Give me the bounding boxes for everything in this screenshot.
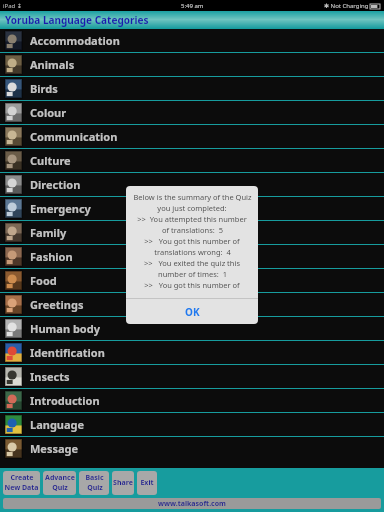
staticText: Accommodation	[30, 33, 120, 48]
staticText: Culture	[30, 153, 71, 168]
staticText: 5:49 am	[181, 2, 204, 10]
staticText: Birds	[30, 81, 58, 96]
button[interactable]: Accommodation	[0, 29, 384, 52]
staticText: Greetings	[30, 297, 84, 312]
staticText: Introduction	[30, 393, 100, 408]
button[interactable]: Colour	[0, 101, 384, 124]
staticText: Communication	[30, 129, 118, 144]
button[interactable]: Exit	[137, 471, 157, 495]
staticText: >> You attempted this number	[137, 214, 247, 224]
staticText: Animals	[30, 57, 75, 72]
button[interactable]: Culture	[0, 149, 384, 172]
staticText: translations wrong: 4	[154, 247, 231, 257]
staticText: >> You got this number of	[144, 280, 240, 290]
button[interactable]: Emergency	[0, 197, 384, 220]
staticText: iPad ↨	[3, 2, 22, 10]
staticText: Exit	[140, 478, 154, 488]
button[interactable]: Share	[112, 471, 134, 495]
staticText: Language	[30, 417, 85, 432]
button[interactable]: Direction	[0, 173, 384, 196]
button[interactable]: Animals	[0, 53, 384, 76]
staticText: number of times: 1	[158, 269, 227, 279]
button[interactable]: Fashion	[0, 245, 384, 268]
staticText: Food	[30, 273, 57, 288]
staticText: Share	[113, 478, 133, 488]
button[interactable]: Food	[0, 269, 384, 292]
staticText: of translations: 5	[162, 225, 223, 235]
button[interactable]: Communication	[0, 125, 384, 148]
button[interactable]: Advance	[43, 471, 76, 495]
staticText: you just completed:	[157, 203, 227, 213]
button[interactable]: Identification	[0, 341, 384, 364]
button[interactable]: www.talkasoft.com	[3, 498, 381, 509]
staticText: Insects	[30, 369, 70, 384]
staticText: ✱ Not Charging	[324, 2, 370, 10]
staticText: Direction	[30, 177, 81, 192]
staticText: Quiz	[87, 483, 103, 493]
button[interactable]: Basic	[79, 471, 109, 495]
button[interactable]: Message	[0, 437, 384, 460]
button[interactable]: Birds	[0, 77, 384, 100]
staticText: New Data	[4, 483, 39, 493]
button[interactable]: Insects	[0, 365, 384, 388]
staticText: Basic	[85, 473, 104, 483]
staticText: >> You got this number of	[144, 236, 240, 246]
staticText: Yoruba Language Categories	[5, 13, 149, 27]
staticText: Family	[30, 225, 67, 240]
staticText: Message	[30, 441, 79, 456]
staticText: Quiz	[52, 483, 68, 493]
staticText: Below is the summary of the Quiz	[133, 192, 252, 202]
button[interactable]: Greetings	[0, 293, 384, 316]
staticText: Create	[10, 473, 34, 483]
staticText: Human body	[30, 321, 100, 336]
button[interactable]: Human body	[0, 317, 384, 340]
staticText: OK	[185, 305, 200, 319]
button[interactable]: Family	[0, 221, 384, 244]
button[interactable]: Introduction	[0, 389, 384, 412]
staticText: Fashion	[30, 249, 73, 264]
staticText: Colour	[30, 105, 67, 120]
button[interactable]: Create	[3, 471, 40, 495]
button[interactable]: OK	[126, 299, 258, 324]
staticText: www.talkasoft.com	[158, 499, 226, 509]
button[interactable]: Language	[0, 413, 384, 436]
staticText: Advance	[45, 473, 75, 483]
staticText: >> You exited the quiz this	[144, 258, 240, 268]
staticText: Identification	[30, 345, 105, 360]
staticText: Emergency	[30, 201, 91, 216]
